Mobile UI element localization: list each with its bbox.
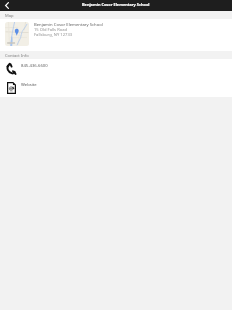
- staticText: Website: [21, 82, 37, 88]
- button[interactable]: Website: [0, 78, 232, 97]
- staticText: 845-436-6600: [21, 63, 48, 69]
- staticText: Map: [5, 13, 14, 19]
- staticText: Benjamin Cosor Elementary School: [82, 2, 150, 7]
- staticText: Fallsburg, NY 12733: [34, 32, 73, 37]
- button[interactable]: 845-436-6600: [0, 59, 232, 78]
- staticText: 15 Old Falls Road: [34, 27, 67, 32]
- button[interactable]: Benjamin Cosor Elementary School: [0, 19, 232, 51]
- staticText: Benjamin Cosor Elementary School: [34, 22, 103, 27]
- button[interactable]: Back: [0, 0, 13, 11]
- staticText: Contact Info: [5, 53, 29, 59]
